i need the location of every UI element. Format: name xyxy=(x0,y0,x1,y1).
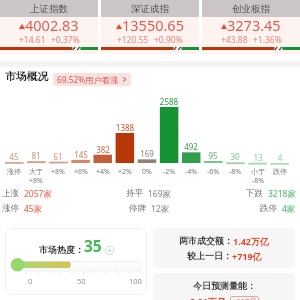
staticText: 0% xyxy=(136,167,158,177)
staticText: -8% xyxy=(224,167,246,177)
staticText: -2% xyxy=(158,167,180,177)
staticText: +0.90% xyxy=(154,34,183,46)
staticText: 3273.45 xyxy=(227,15,281,35)
staticText: +43.88 xyxy=(221,34,248,46)
staticText: +8% xyxy=(25,176,47,186)
staticText: 上涨 xyxy=(2,188,19,199)
staticText: 小于 xyxy=(247,167,269,176)
staticText: 69.52%用户看涨 xyxy=(57,74,119,85)
staticText: 市场热度： xyxy=(39,244,84,255)
staticText: 持平 xyxy=(126,188,143,199)
staticText: 3218家 xyxy=(268,188,296,200)
staticText: 深证成指 xyxy=(131,3,169,15)
staticText: 2.01万亿 xyxy=(190,295,226,300)
staticText: 61 xyxy=(47,151,69,162)
staticText: 13 xyxy=(247,152,269,163)
staticText: -4% xyxy=(180,167,202,177)
staticText: 35 xyxy=(84,235,102,256)
staticText: 涨停 xyxy=(2,203,19,214)
staticText: +4% xyxy=(92,167,114,177)
staticText: 45 xyxy=(3,151,25,162)
staticText: 今日预测量能： xyxy=(193,280,256,291)
staticText: 0 xyxy=(28,276,33,286)
staticText: 145 xyxy=(70,149,92,160)
staticText: 169 xyxy=(136,148,158,159)
staticText: +120.55 xyxy=(117,34,149,46)
staticText: 169家 xyxy=(148,188,172,200)
staticText: 下跌 xyxy=(246,188,263,199)
staticText: 涨停 xyxy=(3,167,25,176)
staticText: -6% xyxy=(202,167,224,177)
staticText: +2% xyxy=(114,167,136,177)
staticText: 30 xyxy=(224,151,246,162)
staticText: 停牌 xyxy=(129,203,146,214)
staticText: 4002.83 xyxy=(25,15,79,35)
staticText: +1.36% xyxy=(253,34,282,46)
button[interactable]: 两市成交额： xyxy=(153,228,295,268)
staticText: 大于 xyxy=(25,167,47,176)
staticText: 上证指数 xyxy=(30,3,68,15)
staticText: 382 xyxy=(92,144,114,155)
button[interactable]: 上证指数 xyxy=(0,0,98,54)
staticText: 跌停 xyxy=(269,167,291,176)
button[interactable]: 帮助 xyxy=(105,246,114,255)
button[interactable]: 创业板指 xyxy=(202,0,300,54)
staticText: 12家 xyxy=(151,203,170,215)
staticText: 两市成交额： xyxy=(179,235,233,246)
staticText: +0.37% xyxy=(51,34,80,46)
staticText: +6% xyxy=(70,167,92,177)
staticText: +14.61 xyxy=(19,34,46,46)
staticText: 1388 xyxy=(114,122,136,133)
staticText: 492 xyxy=(180,141,202,152)
staticText: 50 xyxy=(77,276,86,286)
staticText: +719亿 xyxy=(232,250,262,262)
button[interactable]: 今日预测量能： xyxy=(153,273,295,300)
staticText: 81 xyxy=(25,150,47,161)
staticText: +617亿 xyxy=(232,296,257,300)
staticText: 4家 xyxy=(282,203,296,215)
staticText: 跌停 xyxy=(260,203,277,214)
staticText: 100 xyxy=(129,276,142,286)
staticText: 创业板指 xyxy=(232,3,270,15)
staticText: 市场概况 xyxy=(5,70,49,84)
staticText: -8% xyxy=(247,176,269,186)
staticText: 2588 xyxy=(158,96,180,107)
staticText: 1.42万亿 xyxy=(233,235,269,247)
staticText: 较上一日： xyxy=(187,250,232,261)
button[interactable]: 市场热度： xyxy=(5,228,147,295)
staticText: 45家 xyxy=(24,203,43,215)
staticText: +8% xyxy=(47,167,69,177)
staticText: 2057家 xyxy=(24,188,52,200)
button[interactable]: 69.52%用户看涨 xyxy=(53,73,131,86)
staticText: 95 xyxy=(202,150,224,161)
staticText: 4 xyxy=(269,152,291,163)
button[interactable]: 深证成指 xyxy=(101,0,199,54)
staticText: 13550.65 xyxy=(122,15,184,35)
